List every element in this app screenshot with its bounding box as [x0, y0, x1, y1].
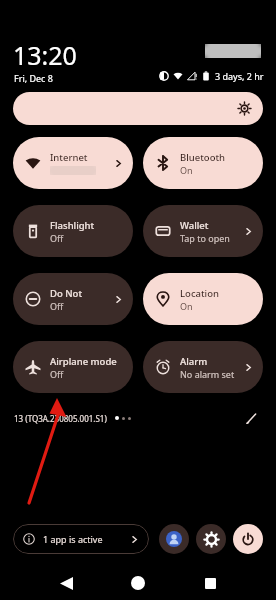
staticText: Airplane mode — [50, 355, 117, 368]
staticText: Internet — [50, 151, 88, 164]
staticText: On — [180, 300, 193, 312]
staticText: Fri, Dec 8 — [14, 72, 53, 84]
button[interactable]: Do Not Disturb — [13, 273, 133, 325]
button[interactable]: Flashlight — [13, 205, 133, 257]
button[interactable]: Edit tiles — [240, 407, 262, 429]
button[interactable]: Settings — [196, 524, 226, 554]
staticText: 1 app is active — [43, 533, 103, 545]
staticText: Alarm — [180, 355, 208, 368]
staticText: 13:20 — [13, 38, 77, 72]
button[interactable]: Power — [233, 524, 263, 554]
staticText: 13 (TQ3A.230805.001.S1) — [14, 413, 107, 424]
staticText: Off — [50, 232, 64, 244]
staticText: Flashlight — [50, 219, 95, 232]
staticText: Off — [50, 300, 64, 312]
staticText: Do Not Disturb — [50, 287, 114, 300]
button[interactable]: Brightness — [13, 92, 263, 125]
button[interactable]: Recent apps — [174, 566, 246, 600]
button[interactable]: Location — [143, 273, 263, 325]
other: Brightness — [238, 102, 251, 115]
button[interactable]: User account — [159, 524, 189, 554]
staticText: 3 days, 2 hr — [215, 70, 264, 82]
staticText: On — [180, 164, 193, 176]
staticText: Off — [50, 368, 64, 380]
button[interactable]: 1 app is active — [13, 524, 149, 554]
staticText: Wallet — [180, 219, 209, 232]
button[interactable]: Internet — [13, 137, 133, 189]
button[interactable]: Wallet — [143, 205, 263, 257]
staticText: Tap to open — [180, 232, 230, 244]
staticText: Bluetooth — [180, 151, 226, 164]
button[interactable]: Bluetooth — [143, 137, 263, 189]
button[interactable]: Home — [102, 566, 174, 600]
button[interactable]: Airplane mode — [13, 341, 133, 393]
staticText: Location — [180, 287, 219, 300]
button[interactable]: Alarm — [143, 341, 263, 393]
staticText: No alarm set — [180, 368, 235, 380]
button[interactable]: Back — [30, 566, 102, 600]
